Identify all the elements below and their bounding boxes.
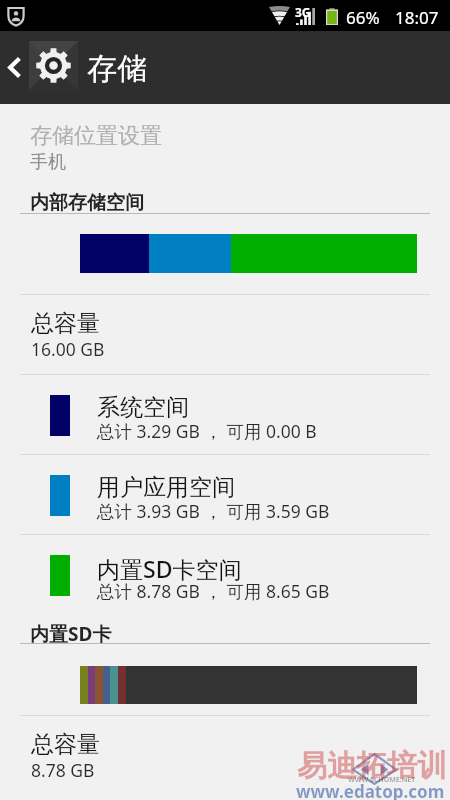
staticText: 总容量 [31,309,100,338]
staticText: 内置SD卡空间 [97,553,242,584]
staticText: 总容量 [31,730,100,759]
staticText: 总计 3.29 GB ， 可用 0.00 B [97,419,317,443]
staticText: 易迪拓培训 [297,747,447,785]
staticText: 内部存储空间 [30,191,144,213]
button[interactable]: 内置SD卡空间 [0,535,450,614]
button[interactable]: 系统空间 [0,375,450,454]
button[interactable]: 总容量 [0,295,450,374]
staticText: 66% [346,6,380,29]
staticText: 总计 3.93 GB ， 可用 3.59 GB [97,499,330,523]
button[interactable]: Back [0,31,29,104]
staticText: www.edatop.com [296,780,445,800]
staticText: 系统空间 [97,393,189,422]
button[interactable]: Settings [29,41,78,90]
staticText: 用户应用空间 [97,473,235,502]
staticText: 16.00 GB [31,337,105,361]
staticText: 手机 [30,151,66,174]
staticText: 存储 [87,50,147,88]
staticText: 8.78 GB [31,758,95,782]
staticText: WWW.SCHOME.NET [348,775,416,785]
staticText: 存储位置设置 [30,122,162,150]
staticText: 总计 8.78 GB ， 可用 8.65 GB [97,579,330,603]
button[interactable]: 总容量 [0,716,450,795]
staticText: 18:07 [395,6,439,29]
button[interactable]: 用户应用空间 [0,455,450,534]
button[interactable]: 存储位置设置 [0,108,450,182]
staticText: 3G [295,4,311,20]
staticText: 内置SD卡 [30,621,112,643]
